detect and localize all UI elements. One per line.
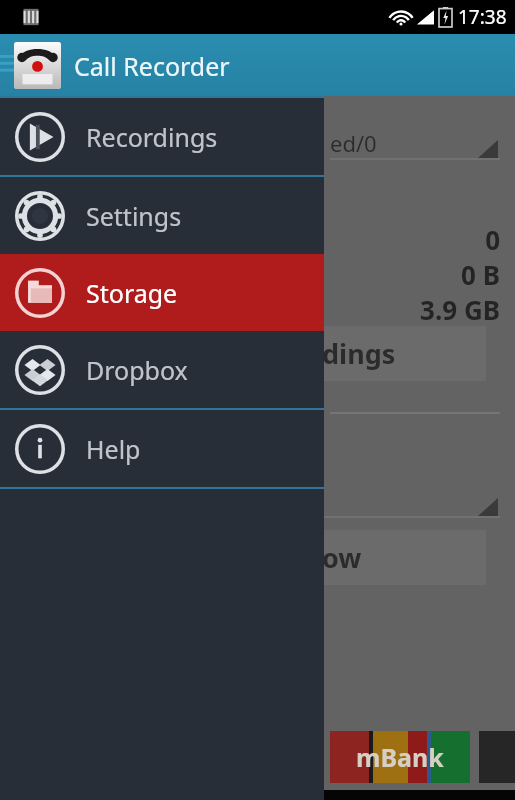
staticText: 0 B	[330, 257, 500, 292]
button[interactable]: Open navigation drawer	[0, 34, 14, 96]
staticText: Settings	[86, 199, 182, 233]
staticText: Dropbox	[86, 353, 188, 387]
staticText: 0	[330, 222, 500, 257]
staticText: mBank	[356, 740, 444, 774]
staticText: Help	[86, 432, 141, 466]
button[interactable]: Help	[0, 410, 324, 487]
staticText: Recordings	[86, 120, 218, 154]
button[interactable]: Settings	[0, 177, 324, 254]
button[interactable]: ow	[318, 530, 486, 585]
staticText: Call Recorder	[74, 49, 230, 83]
button[interactable]: Call Recorder icon	[14, 42, 61, 89]
button[interactable]: Recordings	[0, 98, 324, 175]
staticText: ow	[322, 539, 362, 576]
staticText: dings	[322, 335, 396, 372]
button[interactable]: mBank advertisement	[330, 731, 515, 783]
button[interactable]: Storage	[0, 254, 324, 331]
button[interactable]: Dropbox	[0, 331, 324, 408]
button[interactable]: dings	[318, 326, 486, 381]
staticText: ed/0	[330, 128, 377, 158]
staticText: 3.9 GB	[330, 292, 500, 327]
staticText: 17:38	[458, 4, 507, 30]
staticText: Storage	[86, 276, 178, 310]
